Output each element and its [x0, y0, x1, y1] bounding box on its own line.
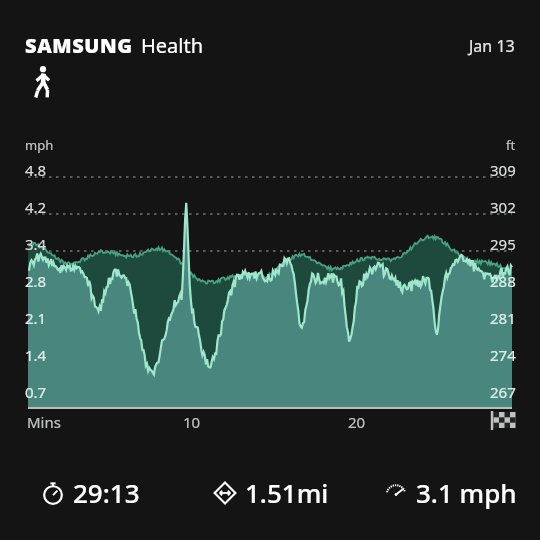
staticText: 4.2 [25, 197, 47, 217]
staticText: 295 [490, 234, 516, 254]
staticText: 1.4 [25, 345, 47, 365]
staticText: Mins [27, 412, 61, 432]
button[interactable]: Average speed [360, 475, 540, 510]
staticText: Health [141, 32, 204, 59]
staticText: 10 [183, 412, 201, 432]
staticText: 302 [490, 197, 516, 217]
staticText: 267 [490, 382, 516, 402]
staticText: 288 [490, 271, 516, 291]
staticText: 2.8 [25, 271, 47, 291]
staticText: ft [506, 136, 516, 154]
staticText: 4.8 [25, 160, 47, 180]
button[interactable]: Duration [0, 475, 180, 510]
staticText: 20 [348, 412, 366, 432]
staticText: SAMSUNG [25, 32, 133, 59]
staticText: 1.51mi [245, 475, 329, 510]
staticText: 274 [490, 345, 516, 365]
staticText: 3.4 [25, 234, 47, 254]
staticText: Jan 13 [469, 35, 515, 57]
staticText: 281 [490, 308, 516, 328]
button[interactable]: Distance [180, 475, 360, 510]
staticText: 29:13 [73, 475, 140, 510]
staticText: 0.7 [25, 382, 47, 402]
staticText: 2.1 [25, 308, 47, 328]
staticText: 309 [490, 160, 516, 180]
staticText: mph [25, 136, 54, 154]
staticText: 3.1 mph [416, 475, 517, 510]
other: Walking workout [24, 64, 62, 102]
